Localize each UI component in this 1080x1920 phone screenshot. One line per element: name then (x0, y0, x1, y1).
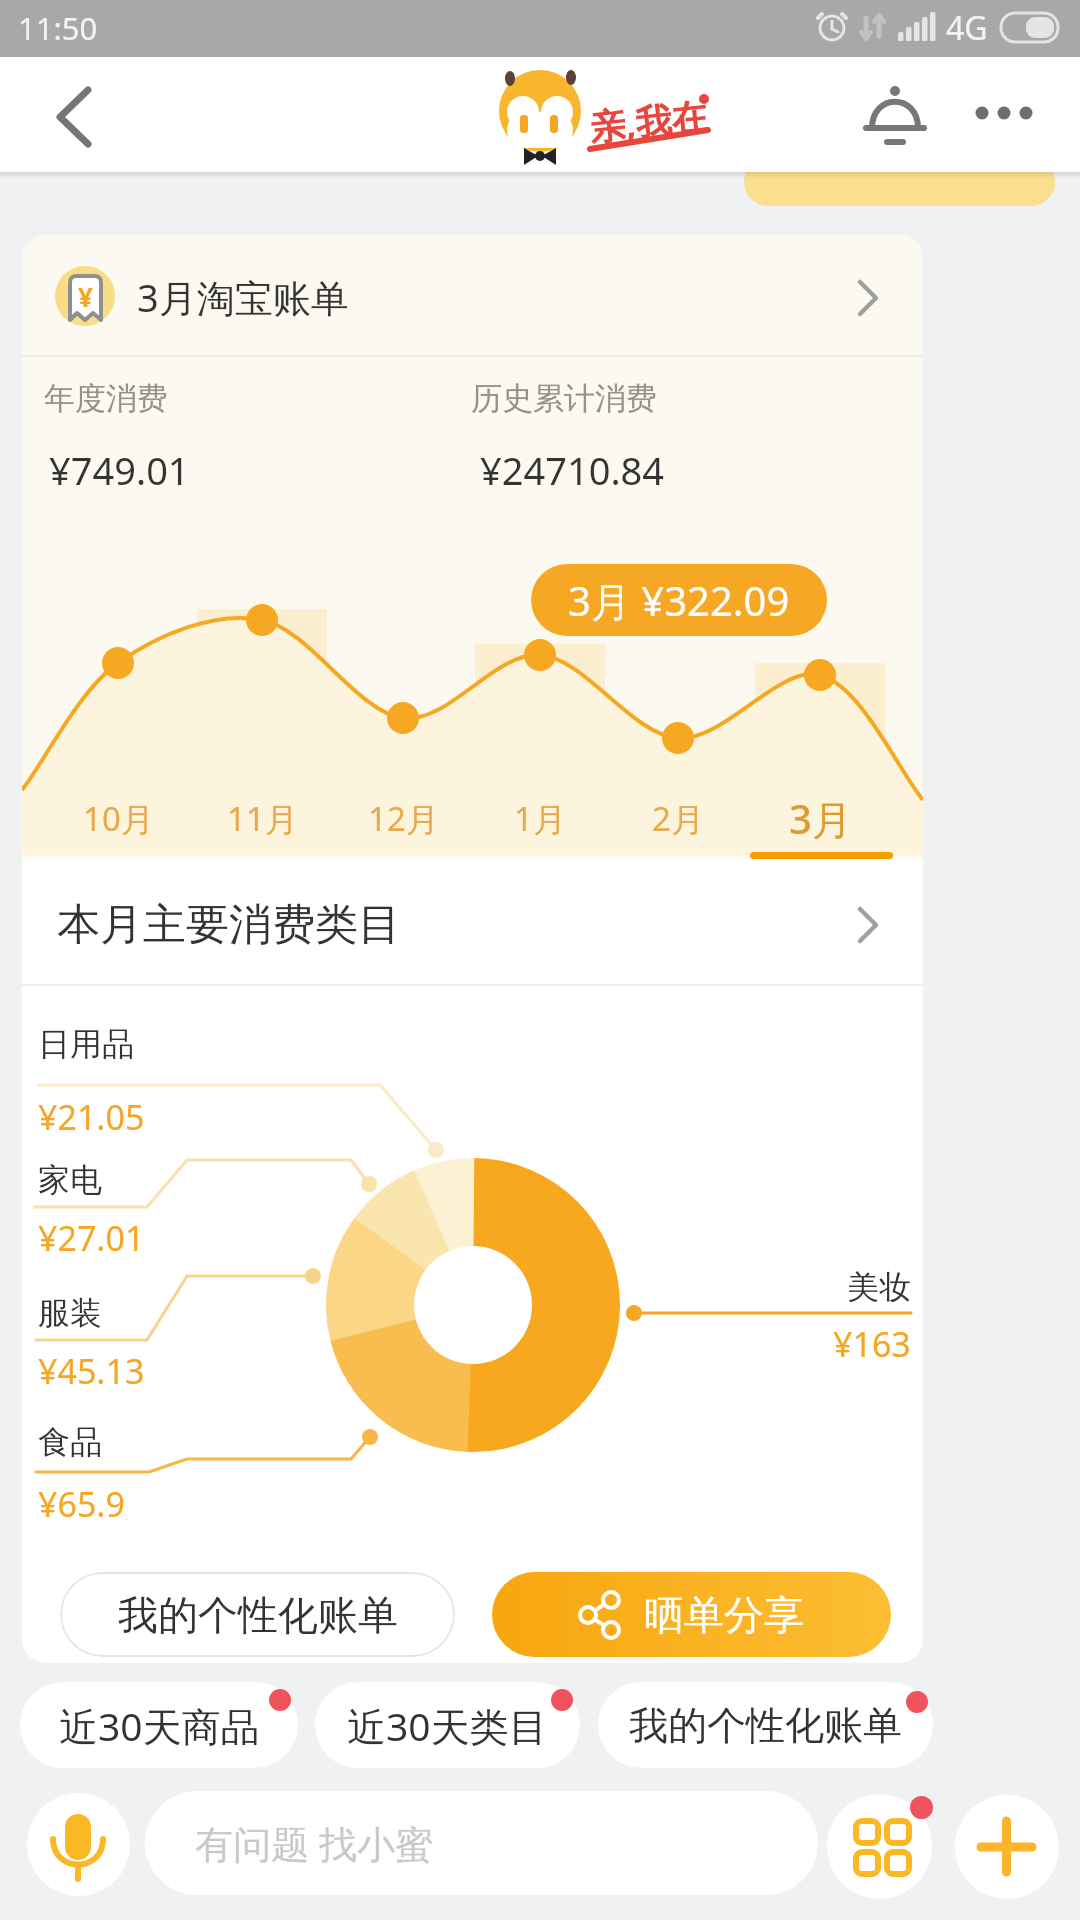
staticText: 3月淘宝账单 (137, 271, 349, 323)
staticText: ¥749.01 (49, 444, 190, 496)
staticText: 晒单分享 (644, 1590, 804, 1640)
button[interactable]: 晒单分享 (492, 1572, 891, 1657)
staticText: 服装 (38, 1293, 102, 1333)
staticText: 历史累计消费 (471, 379, 657, 418)
button[interactable] (955, 1795, 1059, 1899)
staticText: ¥65.9 (38, 1481, 125, 1527)
button[interactable] (27, 1793, 130, 1896)
button[interactable] (22, 862, 923, 985)
staticText: 我的个性化账单 (629, 1701, 902, 1750)
button[interactable] (30, 82, 100, 152)
button[interactable]: 我的个性化账单 (598, 1682, 933, 1768)
button[interactable] (22, 235, 923, 356)
staticText: 近30天类目 (347, 1699, 548, 1752)
staticText: 食品 (38, 1422, 102, 1462)
staticText: 家电 (38, 1160, 102, 1200)
staticText: ¥163 (833, 1321, 911, 1367)
staticText: 本月主要消费类目 (57, 898, 401, 952)
staticText: 近30天商品 (59, 1699, 260, 1752)
staticText: 1月 (514, 796, 566, 841)
staticText: 美妆 (847, 1267, 911, 1307)
staticText: ¥24710.84 (480, 444, 665, 496)
staticText: 我的个性化账单 (118, 1590, 398, 1640)
button[interactable] (827, 1794, 932, 1899)
staticText: 10月 (83, 796, 154, 841)
staticText: 11:50 (18, 7, 98, 49)
button[interactable]: 有问题 找小蜜 (145, 1791, 818, 1895)
staticText: ¥45.13 (38, 1348, 145, 1394)
staticText: 3月 (789, 791, 852, 846)
staticText: ¥27.01 (38, 1215, 145, 1261)
staticText: 亲,我在 (587, 91, 710, 149)
button[interactable]: 我的个性化账单 (60, 1572, 455, 1657)
staticText: ¥21.05 (38, 1094, 145, 1140)
staticText: 2月 (652, 796, 704, 841)
staticText: 日用品 (38, 1024, 134, 1064)
button[interactable] (965, 77, 1045, 157)
staticText: 3月 ¥322.09 (568, 573, 790, 628)
button[interactable]: 近30天类目 (315, 1682, 580, 1768)
button[interactable]: 近30天商品 (20, 1682, 298, 1768)
staticText: 4G (946, 6, 988, 50)
staticText: 有问题 找小蜜 (195, 1817, 433, 1869)
button[interactable] (860, 77, 930, 147)
staticText: 年度消费 (44, 379, 168, 418)
staticText: ¥ (78, 279, 93, 314)
staticText: 11月 (227, 796, 298, 841)
staticText: 12月 (368, 796, 439, 841)
